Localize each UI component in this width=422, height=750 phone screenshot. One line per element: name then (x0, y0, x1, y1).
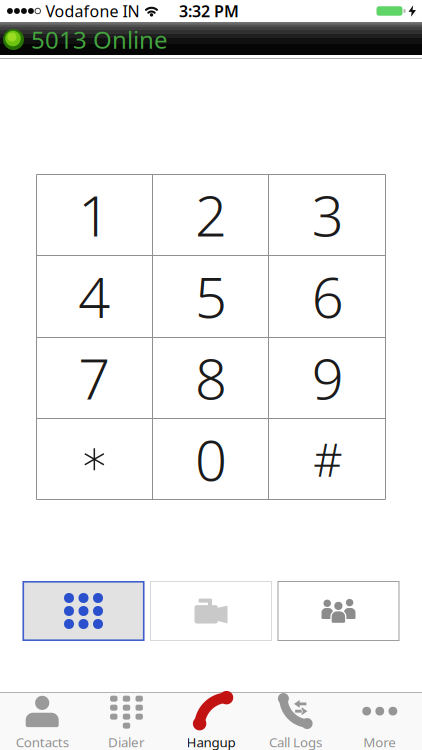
staticText: Hangup (186, 733, 235, 750)
button[interactable]: 9 (269, 337, 386, 418)
button[interactable]: More (338, 693, 422, 750)
staticText: Call Logs (269, 733, 322, 750)
staticText: 2 (195, 178, 227, 252)
staticText: 3 (312, 178, 344, 252)
button[interactable]: 6 (269, 255, 386, 337)
staticText: 6 (312, 259, 344, 333)
staticText: 5 (195, 259, 227, 333)
staticText: More (363, 733, 396, 750)
staticText: 0 (195, 422, 227, 496)
button[interactable]: 4 (36, 255, 153, 337)
button[interactable] (36, 418, 153, 500)
staticText: Contacts (16, 733, 69, 750)
staticText: 7 (78, 341, 110, 415)
button[interactable]: Call Logs (253, 693, 338, 750)
button[interactable]: Video Call (150, 581, 272, 641)
staticText: # (313, 429, 342, 489)
button[interactable]: 2 (153, 174, 269, 255)
button[interactable]: 3 (269, 174, 386, 255)
button[interactable]: 0 (153, 418, 269, 500)
staticText: 5013 Online (31, 24, 168, 55)
staticText: 3:32 PM (179, 0, 239, 22)
button[interactable]: 5 (153, 255, 269, 337)
button[interactable]: Conference (277, 581, 399, 641)
staticText: 1 (78, 178, 110, 252)
staticText: Dialer (108, 733, 145, 750)
staticText: Vodafone IN (45, 0, 139, 22)
button[interactable]: Contacts (0, 693, 84, 750)
button[interactable]: # (269, 418, 386, 500)
button[interactable]: 1 (36, 174, 153, 255)
button[interactable]: Dialer (84, 693, 169, 750)
staticText: 9 (312, 341, 344, 415)
button[interactable]: 7 (36, 337, 153, 418)
staticText: 8 (195, 341, 227, 415)
button[interactable]: Hangup (169, 693, 253, 750)
staticText: 4 (78, 259, 110, 333)
button[interactable]: 8 (153, 337, 269, 418)
button[interactable]: Keypad (22, 581, 144, 641)
